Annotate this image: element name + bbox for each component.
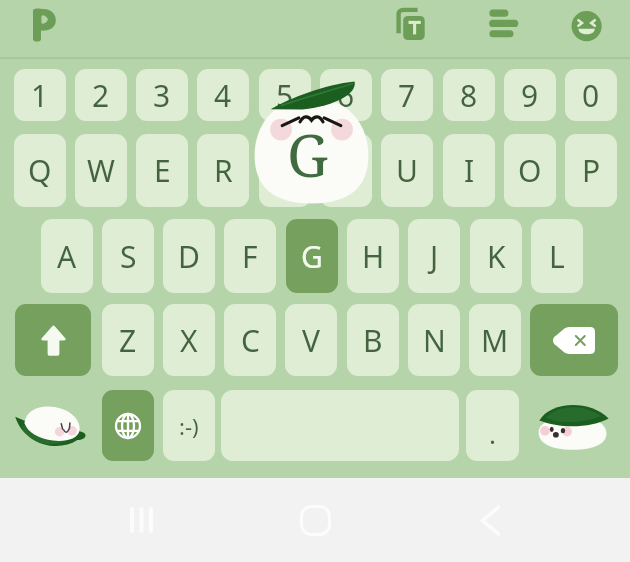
staticText: A xyxy=(57,236,77,277)
button[interactable]: G xyxy=(286,219,338,293)
button[interactable]: R xyxy=(197,134,249,207)
button[interactable]: D xyxy=(163,219,215,293)
button[interactable]: Switch language xyxy=(102,390,154,461)
button[interactable]: V xyxy=(285,304,337,376)
staticText: 0 xyxy=(582,75,600,116)
button[interactable]: Shift xyxy=(15,304,91,376)
staticText: 9 xyxy=(521,75,539,116)
staticText: L xyxy=(549,236,565,277)
button[interactable]: Y xyxy=(320,134,372,207)
staticText: :-) xyxy=(179,411,199,441)
button[interactable]: B xyxy=(347,304,399,376)
button[interactable]: 1 xyxy=(14,69,66,121)
button[interactable]: A xyxy=(41,219,93,293)
button[interactable]: F xyxy=(224,219,276,293)
staticText: H xyxy=(362,236,385,277)
button[interactable]: U xyxy=(381,134,433,207)
button[interactable]: 7 xyxy=(381,69,433,121)
button[interactable]: Z xyxy=(102,304,154,376)
staticText: 7 xyxy=(398,75,416,116)
staticText: D xyxy=(178,236,200,277)
staticText: Z xyxy=(119,320,137,361)
button[interactable]: 5 xyxy=(259,69,311,121)
staticText: P xyxy=(582,150,601,191)
button[interactable]: P xyxy=(565,134,617,207)
staticText: J xyxy=(430,236,439,277)
staticText: R xyxy=(214,150,233,191)
button[interactable]: Backspace xyxy=(530,304,618,376)
staticText: W xyxy=(87,150,115,191)
button[interactable]: Emoji xyxy=(566,6,608,48)
button[interactable]: 4 xyxy=(197,69,249,121)
staticText: B xyxy=(363,320,383,361)
staticText: 8 xyxy=(460,75,478,116)
staticText: G xyxy=(287,115,329,194)
staticText: X xyxy=(180,320,198,361)
staticText: U xyxy=(396,150,418,191)
button[interactable]: 8 xyxy=(443,69,495,121)
staticText: 5 xyxy=(276,75,294,116)
button[interactable]: T xyxy=(259,134,311,207)
staticText: 3 xyxy=(153,75,171,116)
button[interactable]: X xyxy=(163,304,215,376)
button[interactable]: . xyxy=(466,390,519,461)
staticText: F xyxy=(242,236,258,277)
staticText: 4 xyxy=(214,75,232,116)
staticText: S xyxy=(120,236,137,277)
staticText: N xyxy=(423,320,446,361)
staticText: 1 xyxy=(31,75,49,116)
staticText: C xyxy=(241,320,260,361)
staticText: O xyxy=(518,150,542,191)
button[interactable]: I xyxy=(443,134,495,207)
staticText: . xyxy=(489,416,496,451)
staticText: M xyxy=(481,320,509,361)
button[interactable]: 3 xyxy=(136,69,188,121)
button[interactable]: 6 xyxy=(320,69,372,121)
staticText: V xyxy=(302,320,320,361)
button[interactable]: Settings xyxy=(484,7,524,47)
button[interactable]: E xyxy=(136,134,188,207)
button[interactable]: J xyxy=(408,219,460,293)
button[interactable]: Q xyxy=(14,134,66,207)
staticText: Q xyxy=(28,150,52,191)
button[interactable]: O xyxy=(504,134,556,207)
button[interactable]: Clipboard xyxy=(392,7,432,47)
button[interactable]: W xyxy=(75,134,127,207)
button[interactable]: L xyxy=(531,219,583,293)
button[interactable]: H xyxy=(347,219,399,293)
staticText: 2 xyxy=(92,75,110,116)
staticText: E xyxy=(154,150,171,191)
button[interactable]: C xyxy=(224,304,276,376)
button[interactable]: 2 xyxy=(75,69,127,121)
button[interactable]: 0 xyxy=(565,69,617,121)
button[interactable]: M xyxy=(469,304,521,376)
button[interactable]: :-) xyxy=(163,390,215,461)
button[interactable]: N xyxy=(408,304,460,376)
staticText: G xyxy=(301,236,323,277)
button[interactable]: App logo xyxy=(28,7,62,45)
staticText: K xyxy=(487,236,506,277)
button[interactable]: 9 xyxy=(504,69,556,121)
staticText: 6 xyxy=(337,75,355,116)
button[interactable]: Space xyxy=(221,390,459,461)
button[interactable]: K xyxy=(470,219,522,293)
staticText: I xyxy=(464,150,475,191)
button[interactable]: S xyxy=(102,219,154,293)
staticText: T xyxy=(277,150,294,191)
